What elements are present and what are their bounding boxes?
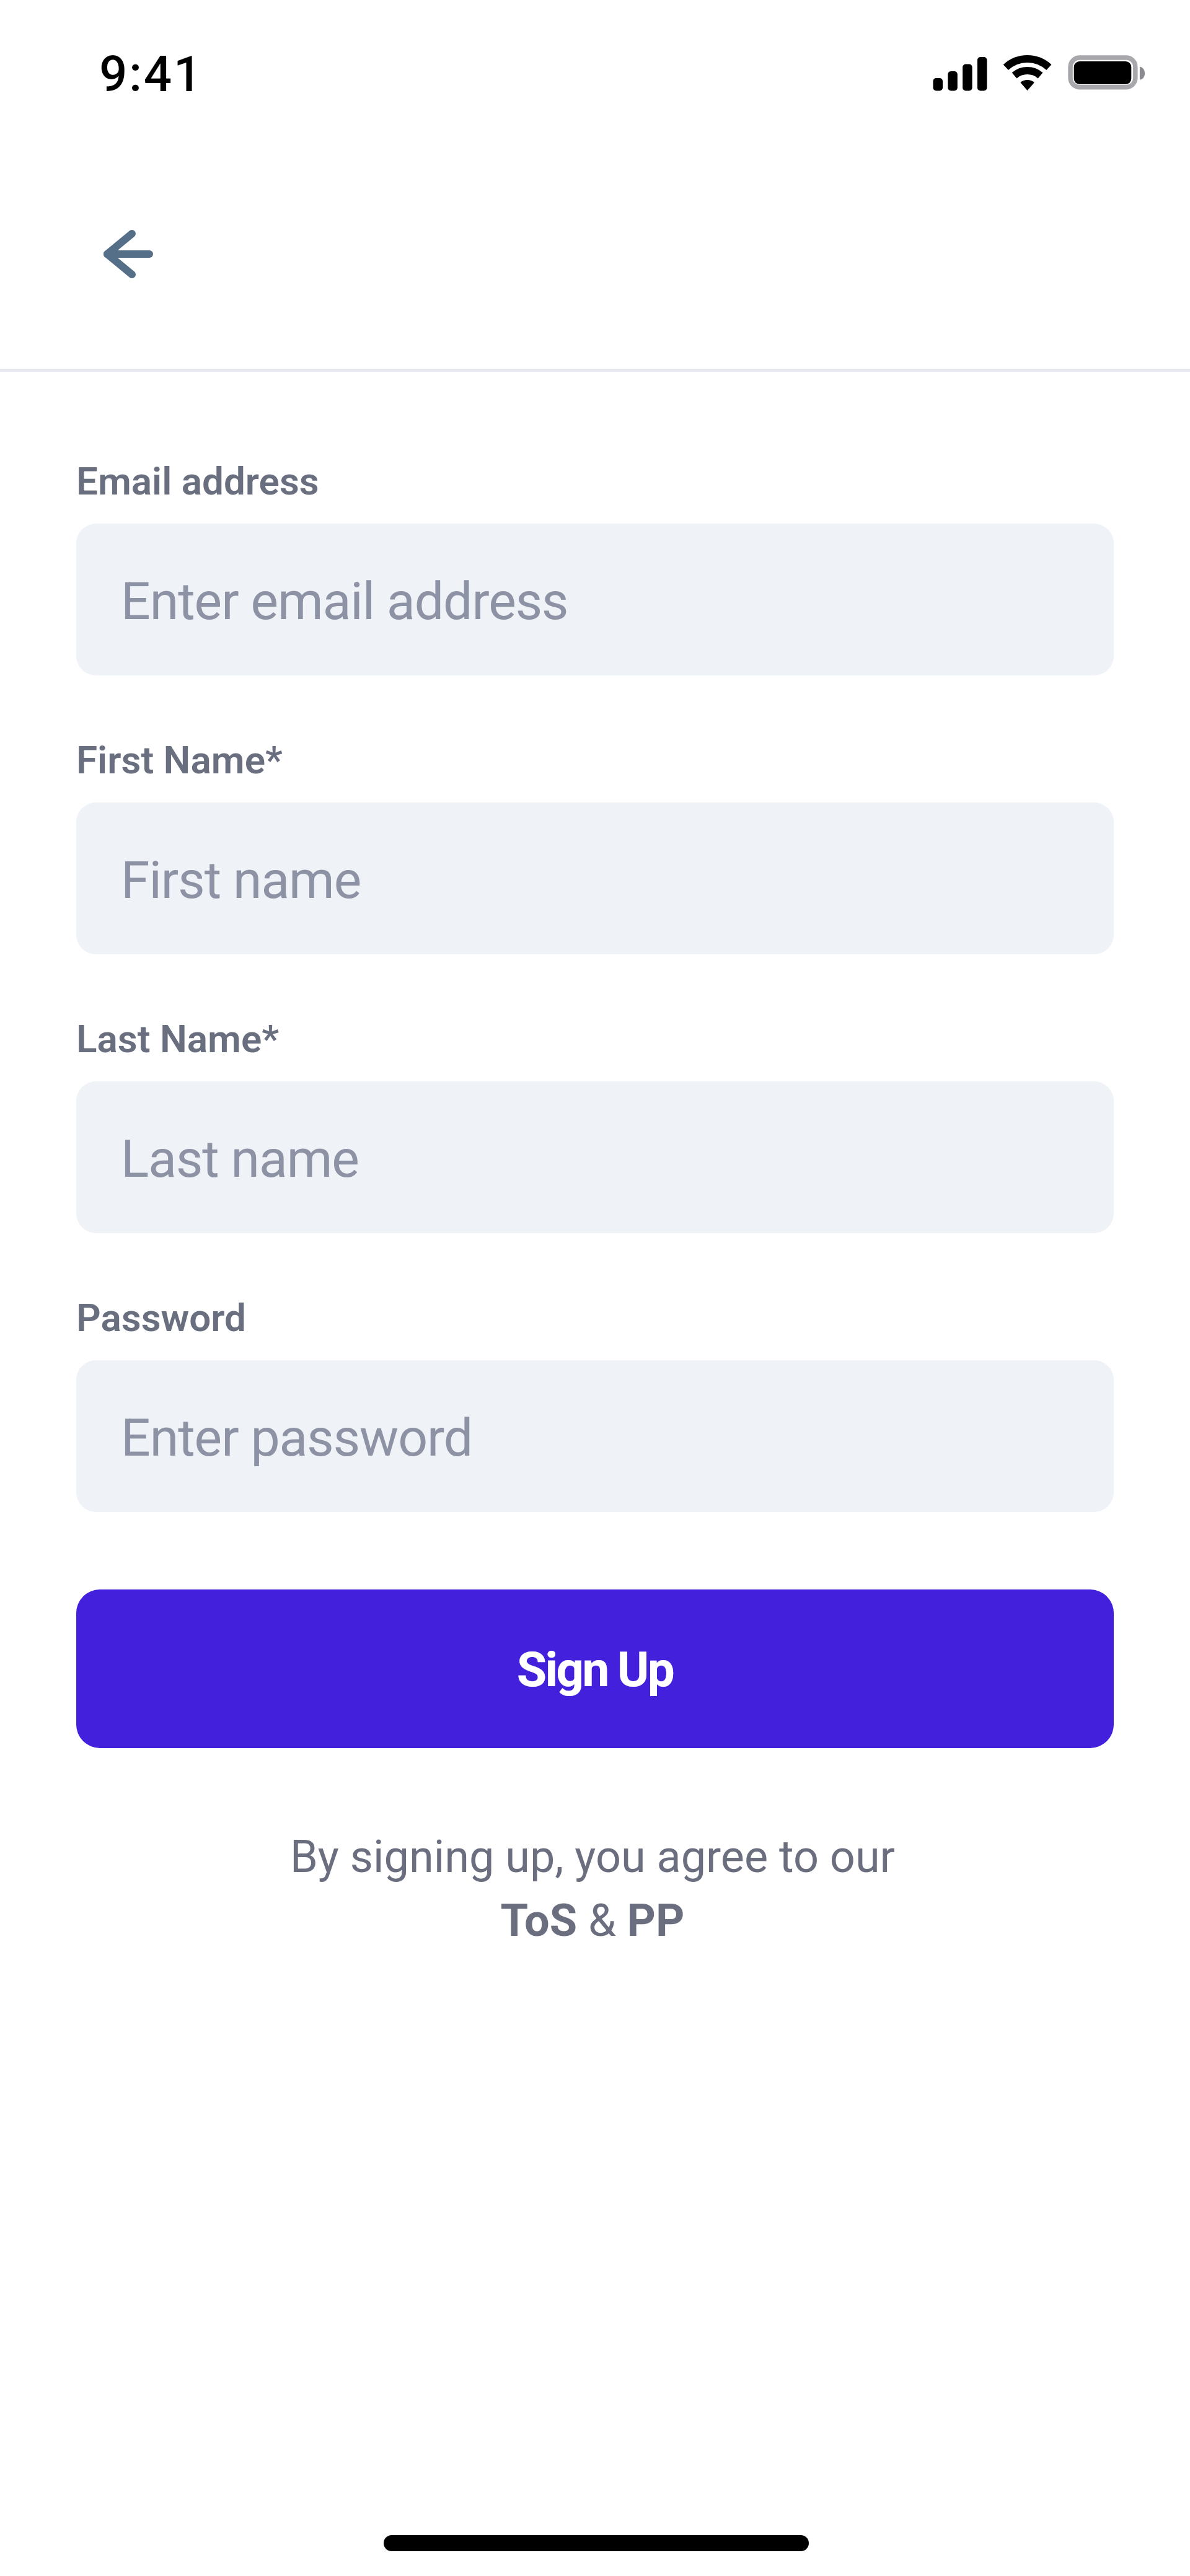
staticText: First Name* [76, 737, 283, 783]
staticText: 9:41 [99, 45, 203, 103]
button[interactable]: Sign Up [76, 1589, 1114, 1748]
staticText: Last Name* [76, 1016, 280, 1062]
staticText: Enter password [121, 1407, 473, 1468]
staticText: First name [121, 850, 361, 910]
button[interactable]: Enter email address [76, 524, 1114, 675]
button[interactable]: Enter password [76, 1360, 1114, 1512]
button[interactable]: First name [76, 802, 1114, 954]
staticText: Password [76, 1295, 247, 1340]
staticText: Last name [121, 1128, 359, 1189]
button[interactable]: Back [77, 203, 180, 306]
staticText: Enter email address [121, 571, 568, 631]
staticText: Sign Up [517, 1642, 674, 1698]
button[interactable]: By signing up, you agree to our ToS & PP [74, 1831, 1111, 1947]
button[interactable]: Last name [76, 1081, 1114, 1233]
staticText: Email address [76, 459, 319, 504]
